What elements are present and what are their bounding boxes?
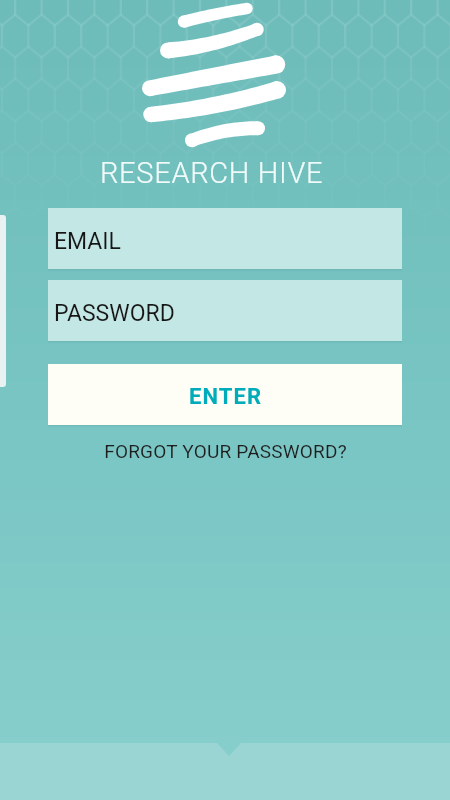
button[interactable]: Open navigation drawer [0, 215, 6, 387]
staticText: FORGOT YOUR PASSWORD? [104, 440, 347, 462]
button[interactable]: ENTER [48, 364, 402, 425]
button[interactable]: FORGOT YOUR PASSWORD? [0, 435, 450, 467]
staticText: EMAIL [54, 228, 122, 255]
button[interactable]: EMAIL [48, 208, 402, 269]
staticText: ENTER [189, 384, 263, 410]
staticText: RESEARCH HIVE [100, 156, 324, 190]
staticText: PASSWORD [54, 300, 175, 327]
button[interactable]: PASSWORD [48, 280, 402, 341]
